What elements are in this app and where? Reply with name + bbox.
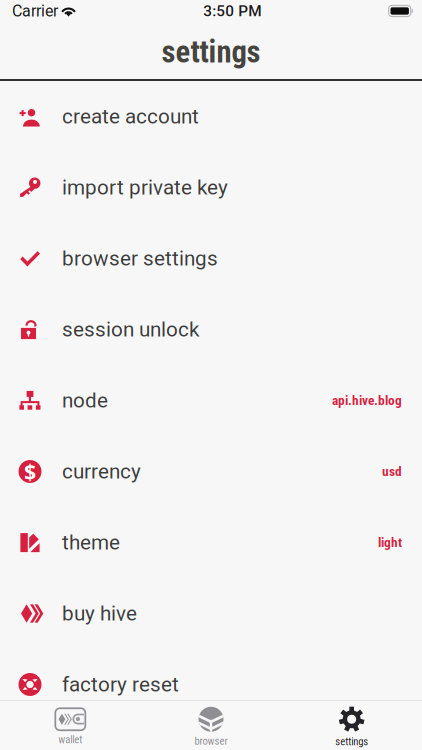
staticText: wallet [58,733,82,746]
button[interactable]: $ [0,436,422,507]
staticText: factory reset [62,672,179,697]
staticText: node [62,388,108,413]
button[interactable]: create account [0,81,422,152]
button[interactable]: import private key [0,152,422,223]
staticText: create account [62,104,199,129]
staticText: browser settings [62,246,218,271]
staticText: $ [24,457,36,486]
button[interactable]: factory reset [0,649,422,720]
button[interactable]: wallet [0,700,141,750]
button[interactable]: browser [141,700,281,750]
staticText: light [378,535,402,550]
button[interactable]: browser settings [0,223,422,294]
staticText: buy hive [62,601,137,626]
staticText: theme [62,530,120,555]
staticText: usd [382,464,402,479]
button[interactable]: buy hive [0,578,422,649]
button[interactable]: node [0,365,422,436]
staticText: session unlock [62,317,199,342]
button[interactable]: session unlock [0,294,422,365]
staticText: Carrier [12,2,58,20]
staticText: browser [194,735,227,747]
staticText: import private key [62,175,228,200]
staticText: settings [161,34,260,70]
staticText: settings [335,735,368,748]
button[interactable]: settings [281,700,422,750]
staticText: 3:50 PM [203,2,261,20]
button[interactable]: theme [0,507,422,578]
staticText: currency [62,459,141,484]
staticText: api.hive.blog [332,393,402,408]
